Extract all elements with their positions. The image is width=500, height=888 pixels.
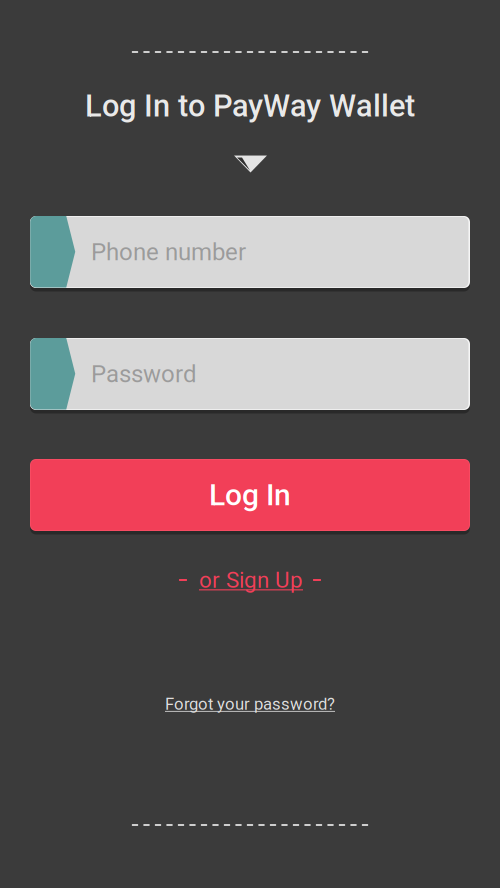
staticText: or Sign Up <box>199 567 303 593</box>
button[interactable]: or Sign Up <box>179 565 321 595</box>
button[interactable]: Log In <box>30 459 470 531</box>
staticText: Phone number <box>91 238 246 266</box>
button[interactable]: Password <box>30 338 470 410</box>
button[interactable]: Forgot your password? <box>165 694 335 714</box>
staticText: Log In <box>209 477 291 513</box>
staticText: Password <box>91 360 197 388</box>
staticText: Forgot your password? <box>165 694 335 714</box>
button[interactable]: Phone number <box>30 216 470 288</box>
staticText: Log In to PayWay Wallet <box>85 88 415 124</box>
